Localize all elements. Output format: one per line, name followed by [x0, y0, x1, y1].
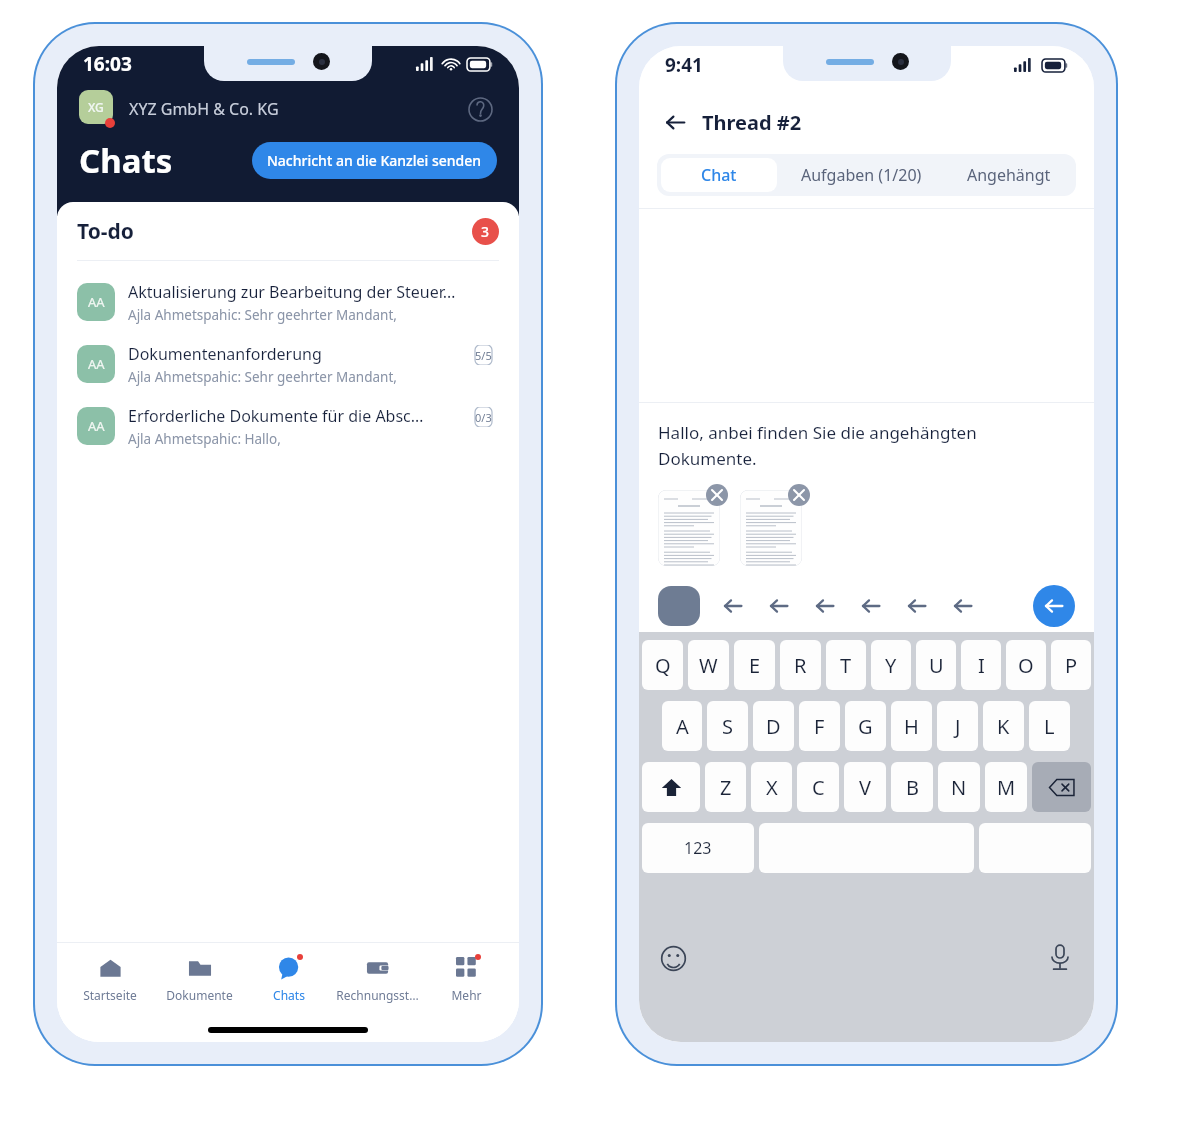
staticText: 123	[684, 837, 712, 859]
button[interactable]: Aktion	[808, 589, 842, 623]
button[interactable]: Rechnungsst…	[333, 942, 422, 1014]
staticText: Chats	[273, 987, 305, 1003]
button[interactable]: Aktion	[946, 589, 980, 623]
button[interactable]: D	[753, 701, 794, 751]
button[interactable]: Hilfe	[463, 92, 497, 126]
staticText: Ajla Ahmetspahic: Hallo,	[128, 430, 281, 448]
staticText: Chat	[701, 164, 737, 186]
button[interactable]: Emoji	[653, 938, 693, 978]
button[interactable]: X	[751, 762, 792, 812]
staticText: AA	[88, 355, 105, 373]
button[interactable]: I	[961, 640, 1001, 690]
button[interactable]: Aktion	[854, 589, 888, 623]
staticText: G	[858, 713, 873, 740]
button[interactable]: Senden	[1033, 585, 1075, 627]
staticText: Chats	[79, 138, 173, 183]
button[interactable]: K	[983, 701, 1024, 751]
button[interactable]: O	[1006, 640, 1046, 690]
staticText: R	[794, 652, 807, 679]
button[interactable]: L	[1029, 701, 1070, 751]
button[interactable]: J	[937, 701, 978, 751]
staticText: Nachricht an die Kanzlei senden	[267, 151, 482, 170]
button[interactable]: T	[826, 640, 866, 690]
staticText: 16:03	[83, 51, 132, 77]
button[interactable]: U	[916, 640, 956, 690]
button[interactable]: Angehängt	[945, 158, 1072, 192]
button[interactable]: B	[891, 762, 933, 812]
button[interactable]: Z	[705, 762, 746, 812]
staticText: Hallo, anbei finden Sie die angehängten …	[658, 421, 1075, 470]
staticText: Angehängt	[967, 164, 1051, 186]
button[interactable]: 123	[642, 823, 754, 873]
button[interactable]: AA	[57, 271, 519, 333]
button[interactable]: G	[845, 701, 886, 751]
button[interactable]: E	[734, 640, 775, 690]
button[interactable]: Aktion	[900, 589, 934, 623]
staticText: F	[814, 713, 825, 740]
button[interactable]: A	[662, 701, 702, 751]
staticText: K	[997, 713, 1010, 740]
staticText: D	[766, 713, 781, 740]
button[interactable]: V	[844, 762, 886, 812]
button[interactable]: W	[688, 640, 729, 690]
staticText: Y	[885, 652, 897, 679]
staticText: Q	[655, 652, 671, 679]
staticText: H	[904, 713, 919, 740]
button[interactable]: Aktion	[762, 589, 796, 623]
button[interactable]: Mehr	[422, 942, 511, 1014]
button[interactable]: Diktieren	[1040, 938, 1080, 978]
staticText: 0/3	[475, 410, 492, 425]
button[interactable]: S	[707, 701, 748, 751]
button[interactable]: Zurück	[657, 104, 693, 140]
button[interactable]: Eingabe	[979, 823, 1091, 873]
staticText: To-do	[77, 217, 134, 246]
button[interactable]: P	[1051, 640, 1091, 690]
button[interactable]: H	[891, 701, 932, 751]
button[interactable]: M	[985, 762, 1027, 812]
button[interactable]: N	[938, 762, 980, 812]
staticText: L	[1044, 713, 1055, 740]
button[interactable]: C	[797, 762, 839, 812]
button[interactable]: Aufgaben (1/20)	[777, 158, 945, 192]
button[interactable]	[658, 490, 720, 566]
staticText: P	[1065, 652, 1078, 679]
button[interactable]: Entfernen	[706, 484, 728, 506]
staticText: Aktualisierung zur Bearbeitung der Steue…	[128, 281, 456, 303]
staticText: B	[906, 774, 919, 801]
button[interactable]: Chats	[244, 942, 333, 1014]
button[interactable]: Dokumente	[155, 942, 244, 1014]
staticText: Thread #2	[702, 109, 802, 136]
button[interactable]: Q	[642, 640, 683, 690]
button[interactable]: Startseite	[65, 942, 155, 1014]
staticText: O	[1018, 652, 1034, 679]
button[interactable]: Y	[871, 640, 911, 690]
button[interactable]: AA	[57, 395, 519, 457]
staticText: AA	[88, 417, 105, 435]
button[interactable]	[740, 490, 802, 566]
staticText: A	[676, 713, 689, 740]
button[interactable]: Umschalt	[642, 762, 700, 812]
staticText: J	[955, 713, 961, 740]
staticText: I	[978, 652, 985, 679]
button[interactable]: Aktion	[716, 589, 750, 623]
staticText: 9:41	[665, 52, 703, 78]
button[interactable]: Nachricht an die Kanzlei senden	[252, 142, 497, 179]
button[interactable]: Löschen	[1032, 762, 1091, 812]
button[interactable]: Anhang	[658, 586, 700, 626]
staticText: Mehr	[451, 987, 482, 1003]
staticText: N	[951, 774, 967, 801]
button[interactable]: XG	[79, 90, 117, 128]
button[interactable]: AA	[57, 333, 519, 395]
staticText: S	[722, 713, 733, 740]
button[interactable]: Chat	[661, 158, 777, 192]
staticText: 3	[481, 222, 490, 241]
button[interactable]: F	[799, 701, 840, 751]
button[interactable]: R	[780, 640, 821, 690]
staticText: Ajla Ahmetspahic: Sehr geehrter Mandant,	[128, 368, 397, 386]
staticText: Startseite	[83, 987, 137, 1003]
staticText: W	[699, 652, 718, 679]
staticText: T	[840, 652, 852, 679]
staticText: C	[812, 774, 825, 801]
button[interactable]: Entfernen	[788, 484, 810, 506]
